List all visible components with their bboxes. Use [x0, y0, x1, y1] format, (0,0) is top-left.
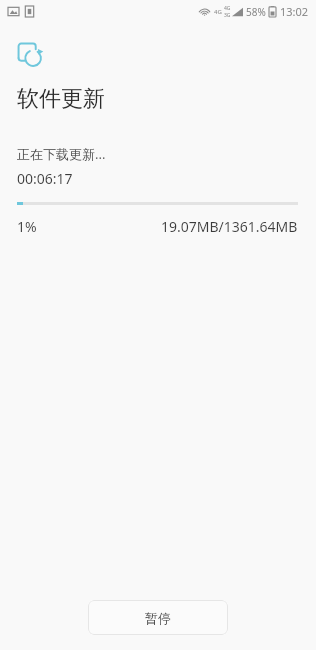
staticText: 58% [246, 5, 266, 19]
button[interactable]: 暂停 [88, 600, 228, 635]
staticText: 4G [224, 5, 231, 12]
staticText: 00:06:17 [17, 169, 73, 188]
staticText: 13:02 [280, 4, 309, 19]
staticText: 4G [214, 8, 222, 16]
staticText: 暂停 [145, 610, 171, 626]
staticText: 1% [17, 217, 37, 236]
staticText: 软件更新 [17, 85, 105, 113]
staticText: 19.07MB/1361.64MB [161, 217, 298, 236]
staticText: 正在下载更新... [17, 145, 106, 163]
staticText: 3G [224, 12, 231, 19]
